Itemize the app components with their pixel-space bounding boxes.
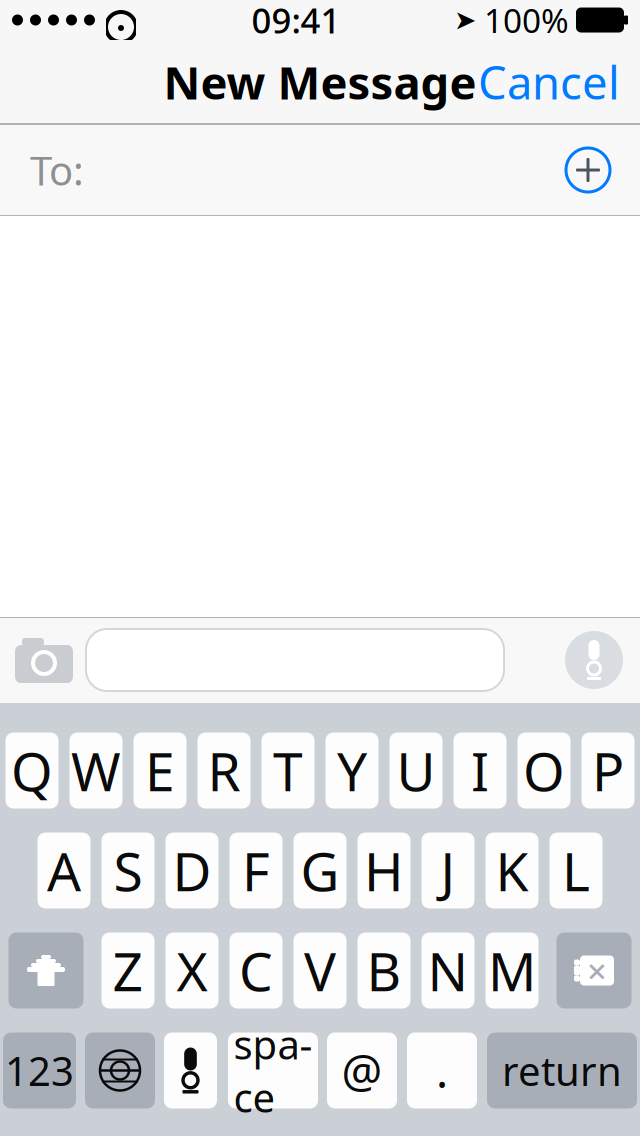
button[interactable]: I: [453, 732, 506, 808]
staticText: V: [304, 935, 336, 1006]
staticText: R: [207, 735, 240, 806]
button[interactable]: A: [37, 832, 90, 908]
staticText: P: [592, 735, 624, 806]
button[interactable]: Message field: [86, 629, 504, 691]
button[interactable]: J: [421, 832, 474, 908]
button[interactable]: space: [228, 1032, 318, 1108]
staticText: H: [364, 835, 404, 906]
staticText: I: [471, 735, 489, 806]
button[interactable]: Shift: [8, 932, 83, 1008]
button[interactable]: Next keyboard: [85, 1032, 155, 1108]
staticText: N: [427, 935, 468, 1006]
staticText: T: [273, 735, 303, 806]
button[interactable]: Y: [325, 732, 378, 808]
button[interactable]: C: [229, 932, 282, 1008]
button[interactable]: H: [357, 832, 410, 908]
button[interactable]: Cancel: [462, 42, 636, 122]
staticText: K: [495, 835, 528, 906]
button[interactable]: X: [165, 932, 218, 1008]
staticText: O: [523, 735, 565, 806]
button[interactable]: U: [389, 732, 442, 808]
button[interactable]: Camera: [2, 617, 86, 703]
staticText: return: [502, 1044, 622, 1097]
button[interactable]: M: [485, 932, 538, 1008]
button[interactable]: Backspace: [556, 932, 631, 1008]
button[interactable]: O: [517, 732, 570, 808]
button[interactable]: Dictation: [164, 1032, 217, 1108]
button[interactable]: B: [357, 932, 410, 1008]
button[interactable]: return: [487, 1032, 637, 1108]
staticText: G: [300, 835, 339, 906]
button[interactable]: 123: [3, 1032, 76, 1108]
button[interactable]: T: [261, 732, 314, 808]
staticText: Z: [112, 935, 143, 1006]
staticText: Q: [11, 735, 53, 806]
button[interactable]: K: [485, 832, 538, 908]
staticText: J: [440, 835, 455, 906]
button[interactable]: P: [581, 732, 634, 808]
staticText: 100%: [484, 0, 569, 42]
staticText: New Message: [163, 52, 476, 112]
staticText: ➤: [454, 5, 476, 35]
button[interactable]: E: [133, 732, 186, 808]
button[interactable]: Add contact: [556, 138, 620, 202]
button[interactable]: D: [165, 832, 218, 908]
staticText: 123: [5, 1044, 74, 1097]
button[interactable]: @: [327, 1032, 397, 1108]
staticText: B: [366, 935, 401, 1006]
staticText: F: [242, 835, 270, 906]
button[interactable]: W: [69, 732, 122, 808]
button[interactable]: F: [229, 832, 282, 908]
button[interactable]: S: [101, 832, 154, 908]
staticText: 09:41: [251, 0, 340, 43]
staticText: A: [47, 835, 81, 906]
staticText: Y: [337, 735, 367, 806]
staticText: ×: [587, 947, 607, 993]
button[interactable]: G: [293, 832, 346, 908]
button[interactable]: R: [197, 732, 250, 808]
button[interactable]: .: [407, 1032, 477, 1108]
staticText: space: [233, 1017, 312, 1124]
staticText: U: [396, 735, 435, 806]
staticText: S: [113, 835, 142, 906]
staticText: Cancel: [478, 52, 620, 112]
button[interactable]: V: [293, 932, 346, 1008]
button[interactable]: Q: [5, 732, 58, 808]
staticText: To:: [30, 143, 84, 196]
button[interactable]: Z: [101, 932, 154, 1008]
staticText: C: [239, 935, 273, 1006]
staticText: X: [176, 935, 207, 1006]
button[interactable]: N: [421, 932, 474, 1008]
staticText: L: [562, 835, 590, 906]
button[interactable]: Dictate: [552, 617, 636, 703]
button[interactable]: L: [549, 832, 602, 908]
staticText: @: [341, 1040, 382, 1101]
staticText: .: [436, 1040, 448, 1101]
staticText: D: [172, 835, 211, 906]
staticText: M: [488, 935, 536, 1006]
staticText: E: [145, 735, 175, 806]
staticText: W: [71, 735, 121, 806]
